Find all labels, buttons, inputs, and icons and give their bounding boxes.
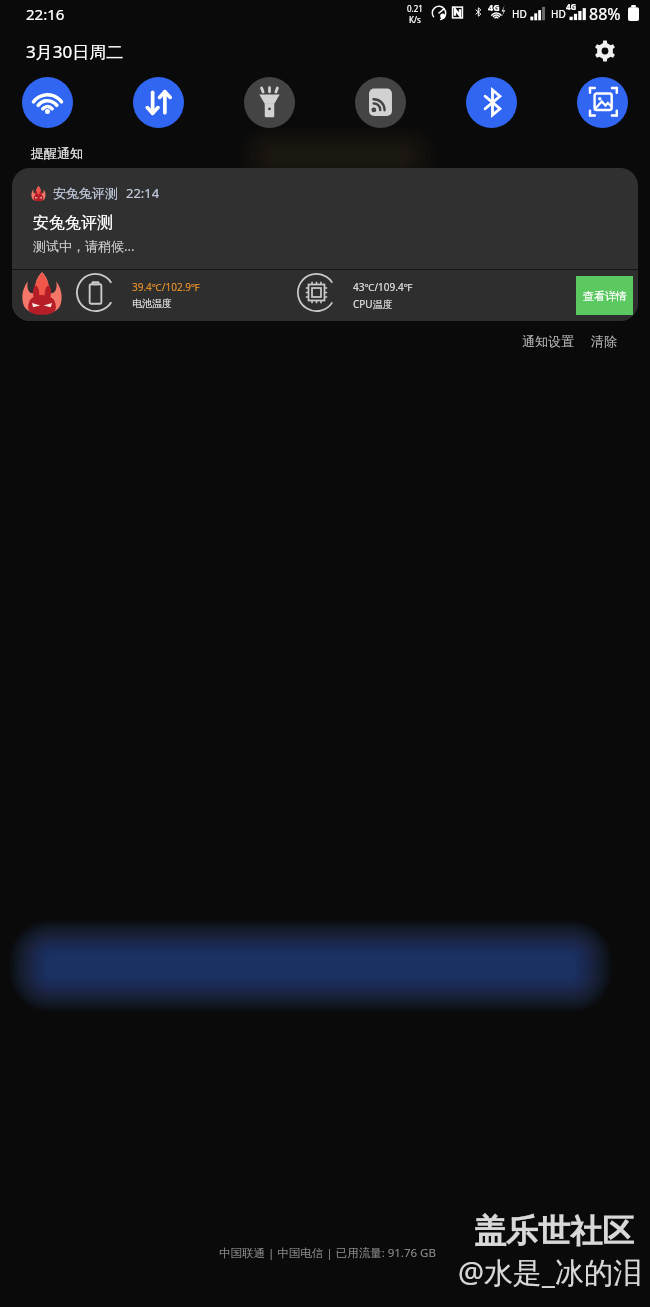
staticText: 清除 [591,333,617,349]
button[interactable]: Wi-Fi [22,77,73,128]
staticText: CPU温度 [353,297,393,311]
staticText: 中国联通 | 中国电信 | 已用流量: 91.76 GB [219,1245,436,1261]
staticText: 查看详情 [583,289,627,303]
staticText: @水是_冰的泪 [458,1252,642,1292]
other: Alarm [431,5,447,21]
other: Bluetooth [469,3,487,21]
staticText: 4G [566,1,577,12]
button[interactable]: Screenshot [577,77,628,128]
staticText: 测试中，请稍候... [33,237,135,255]
button[interactable]: Flashlight [244,77,295,128]
staticText: 39.4℃/102.9℉ [132,280,200,294]
other: Wi-Fi [488,3,508,23]
staticText: HD [512,7,527,21]
staticText: K/s [409,14,421,25]
staticText: 盖乐世社区 [474,1211,634,1251]
staticText: 0.21 [407,3,423,14]
button[interactable]: 清除 [585,329,623,353]
button[interactable]: Bluetooth [466,77,517,128]
button[interactable]: Smart View [355,77,406,128]
staticText: 安兔兔评测 [53,185,118,201]
staticText: 安兔兔评测 [33,213,113,233]
other: Mobile signal 2 [568,3,587,22]
staticText: 88% [589,3,621,25]
button[interactable]: 安兔兔评测 [12,168,638,321]
staticText: 通知设置 [522,333,574,349]
staticText: 22:16 [26,4,65,24]
other: Mobile signal [529,5,546,22]
button[interactable]: 通知设置 [516,329,580,353]
button[interactable]: Settings [594,40,616,62]
staticText: 22:14 [126,184,160,202]
staticText: 电池温度 [132,297,172,310]
staticText: 4G [488,1,500,13]
button[interactable]: Mobile data [133,77,184,128]
staticText: 3月30日周二 [26,40,124,63]
other: NFC [450,5,465,20]
staticText: 43℃/109.4℉ [353,280,413,294]
staticText: HD [551,7,566,21]
button[interactable]: 查看详情 [576,276,633,315]
staticText: 提醒通知 [31,145,83,161]
